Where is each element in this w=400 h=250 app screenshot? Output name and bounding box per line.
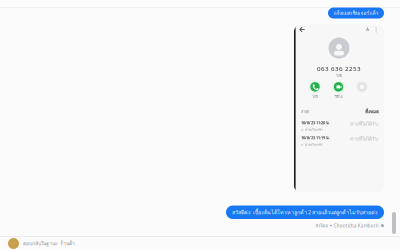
staticText: ล่าสุด: [301, 109, 309, 114]
staticText: สายที่ไม่ได้รับ: [350, 135, 378, 143]
staticText: ↙ สายเรียกเข้า: [301, 142, 323, 147]
staticText: สายที่ไม่ได้รับ: [350, 120, 378, 128]
staticText: ตอบกลับในฐานะ ร้านค้า: [23, 239, 75, 248]
staticText: 10/8/23 11:20 น.: [301, 120, 330, 126]
button[interactable]: แจ้งแมสเซ็นเจอร์แล้ว: [328, 7, 384, 19]
staticText: ทั้งหมด: [365, 108, 379, 115]
staticText: โทร: [312, 94, 318, 99]
staticText: ส่งโดย: [315, 222, 328, 229]
staticText: ↙ สายเรียกเข้า: [301, 127, 323, 132]
button[interactable]: สวัสดีค่ะ เบื้องต้นได้โทรหาลูกค้า 2 สายแ…: [226, 206, 384, 219]
staticText: สวัสดีค่ะ เบื้องต้นได้โทรหาลูกค้า 2 สายแ…: [232, 208, 378, 217]
staticText: ⋮: [373, 26, 379, 33]
staticText: แจ้งแมสเซ็นเจอร์แล้ว: [333, 9, 378, 17]
staticText: 063 636 2253: [317, 64, 361, 73]
staticText: วิดีโอ: [334, 94, 342, 99]
staticText: ไทย: [336, 73, 342, 78]
staticText: 10/8/23 11:19 น.: [301, 135, 330, 141]
staticText: Chonticha Kamborn: [334, 222, 379, 229]
staticText: A: [366, 26, 369, 33]
